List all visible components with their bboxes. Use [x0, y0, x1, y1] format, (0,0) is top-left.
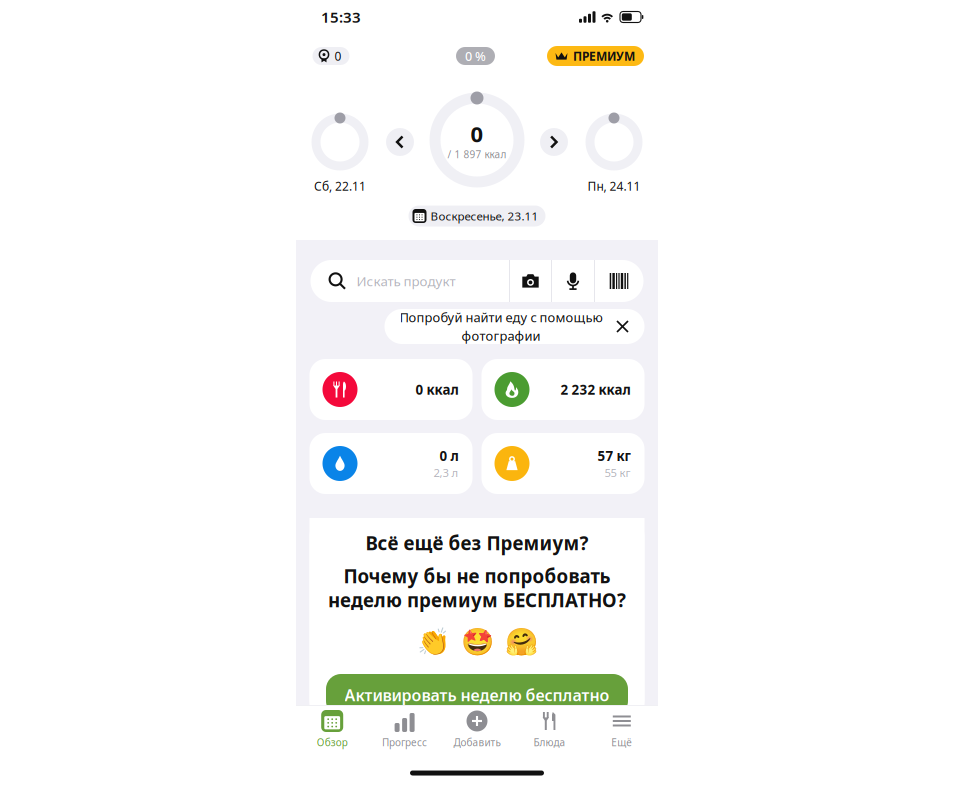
staticText: ПРЕМИУМ [573, 48, 635, 64]
button[interactable]: ПРЕМИУМ [547, 46, 644, 66]
staticText: неделю премиум БЕСПЛАТНО? [328, 588, 626, 612]
staticText: 👏 [416, 627, 449, 657]
staticText: Всё ещё без Премиум? [365, 531, 588, 555]
button[interactable]: Search food by photo [510, 260, 551, 302]
button[interactable]: 0 ккал [309, 359, 472, 420]
staticText: Сб, 22.11 [314, 178, 366, 194]
staticText: 0 % [465, 47, 486, 65]
button[interactable]: Previous day [386, 128, 414, 156]
staticText: 55 кг [604, 465, 630, 480]
staticText: 0 [334, 48, 341, 64]
button[interactable]: Scan barcode [595, 260, 643, 302]
staticText: Обзор [317, 735, 348, 749]
staticText: Искать продукт [356, 272, 455, 290]
staticText: 57 кг [597, 447, 630, 465]
staticText: 2 232 ккал [560, 380, 630, 399]
button[interactable]: Обзор [296, 706, 368, 753]
staticText: Активировать неделю бесплатно [344, 684, 609, 706]
staticText: / 1 897 ккал [447, 148, 506, 161]
staticText: 🤩 [460, 627, 493, 657]
staticText: 15:33 [321, 7, 361, 27]
staticText: Почему бы не попробовать [343, 564, 610, 588]
staticText: Воскресенье, 23.11 [430, 208, 538, 224]
staticText: 0 ккал [415, 380, 458, 399]
button[interactable]: Воскресенье, 23.11 [408, 205, 545, 226]
staticText: Пн, 24.11 [587, 178, 640, 194]
button[interactable]: Next day [540, 128, 568, 156]
button[interactable]: Искать продукт [311, 260, 509, 302]
button[interactable]: Активировать неделю бесплатно [326, 674, 628, 716]
button[interactable]: Прогресс [368, 706, 441, 753]
button[interactable]: 57 кг [481, 433, 644, 494]
staticText: 🤗 [504, 627, 537, 657]
staticText: Блюда [533, 735, 565, 749]
button[interactable]: Voice search [552, 260, 594, 302]
button[interactable]: Dismiss tip [612, 316, 632, 336]
staticText: Прогресс [382, 735, 427, 749]
staticText: Добавить [453, 735, 500, 749]
button[interactable]: Ещё [586, 706, 658, 753]
staticText: 0 [470, 119, 483, 149]
staticText: 2,3 л [433, 465, 458, 480]
button[interactable]: Блюда [513, 706, 586, 753]
button[interactable]: 2 232 ккал [481, 359, 644, 420]
staticText: Попробуй найти еду с помощью [399, 308, 602, 326]
staticText: 0 л [439, 447, 458, 465]
button[interactable]: Добавить [441, 706, 513, 753]
button[interactable]: 0 [312, 47, 349, 65]
button[interactable]: 0 % [456, 47, 495, 65]
staticText: Ещё [611, 735, 632, 749]
button[interactable]: 0 л [309, 433, 472, 494]
staticText: фотографии [461, 327, 540, 345]
